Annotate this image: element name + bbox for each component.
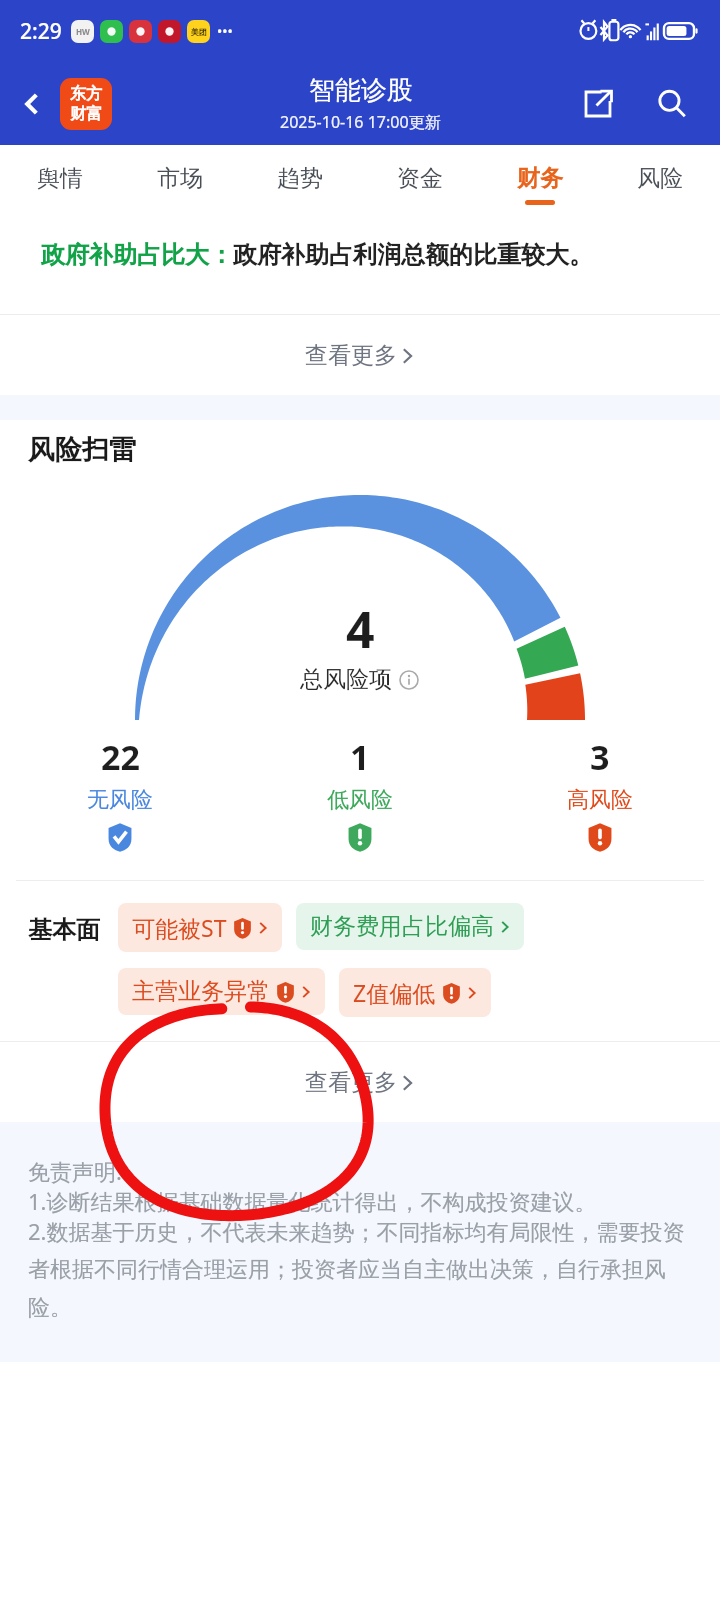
staticText: 东方 <box>70 84 102 104</box>
button[interactable]: Info <box>398 669 420 691</box>
button[interactable]: 政府补助占比大：政府补助占利润总额的比重较大。 <box>17 226 703 300</box>
button[interactable]: 查看更多 <box>0 315 720 395</box>
staticText: 总风险项 <box>300 665 392 694</box>
staticText: 美团 <box>191 27 207 37</box>
staticText: 财富 <box>70 104 102 124</box>
staticText: 可能被ST <box>132 912 227 943</box>
staticText: 2.数据基于历史，不代表未来趋势；不同指标均有局限性，需要投资者根据不同行情合理… <box>28 1216 696 1322</box>
staticText: 2025-10-16 17:00更新 <box>280 111 441 133</box>
staticText: 舆情 <box>37 164 83 193</box>
staticText: 低风险 <box>327 786 393 814</box>
staticText: 政府补助占比大：政府补助占利润总额的比重较大。 <box>41 240 593 270</box>
button[interactable]: 可能被ST <box>118 903 282 952</box>
button[interactable]: 查看更多 <box>0 1042 720 1122</box>
staticText: Z值偏低 <box>353 977 436 1008</box>
button[interactable]: 东方 <box>60 78 112 130</box>
staticText: HW <box>76 26 90 37</box>
staticText: 4 <box>346 595 375 663</box>
button[interactable]: 舆情 <box>0 145 120 223</box>
button[interactable]: Z值偏低 <box>339 968 491 1017</box>
button[interactable]: 3 <box>480 734 720 852</box>
staticText: ••• <box>217 22 233 41</box>
button[interactable]: 主营业务异常 <box>118 968 325 1015</box>
staticText: 财务费用占比偏高 <box>310 912 494 941</box>
staticText: 财务 <box>517 164 563 193</box>
button[interactable]: 财务 <box>480 145 600 223</box>
button[interactable]: 风险 <box>600 145 720 223</box>
button[interactable]: 财务费用占比偏高 <box>296 903 524 950</box>
staticText: 免责声明: <box>28 1156 122 1186</box>
staticText: 主营业务异常 <box>132 977 270 1006</box>
staticText: 22 <box>101 734 140 780</box>
staticText: 1.诊断结果根据基础数据量化统计得出，不构成投资建议。 <box>28 1186 597 1216</box>
button[interactable]: 1 <box>240 734 480 852</box>
button[interactable]: 市场 <box>120 145 240 223</box>
staticText: 3 <box>590 734 610 780</box>
staticText: 智能诊股 <box>309 74 413 107</box>
button[interactable]: Back <box>8 80 56 128</box>
staticText: 资金 <box>397 164 443 193</box>
staticText: 无风险 <box>87 786 153 814</box>
staticText: 查看更多 <box>305 1068 397 1097</box>
button[interactable]: Search <box>648 80 696 128</box>
staticText: 风险扫雷 <box>28 433 136 467</box>
staticText: 查看更多 <box>305 341 397 370</box>
staticText: 市场 <box>157 164 203 193</box>
button[interactable]: 资金 <box>360 145 480 223</box>
staticText: 风险 <box>637 164 683 193</box>
button[interactable]: Share <box>574 80 622 128</box>
staticText: 2:29 <box>20 17 62 46</box>
staticText: 高风险 <box>567 786 633 814</box>
staticText: 基本面 <box>28 915 100 945</box>
staticText: 趋势 <box>277 164 323 193</box>
staticText: 1 <box>350 734 370 780</box>
button[interactable]: 趋势 <box>240 145 360 223</box>
button[interactable]: 22 <box>0 734 240 852</box>
